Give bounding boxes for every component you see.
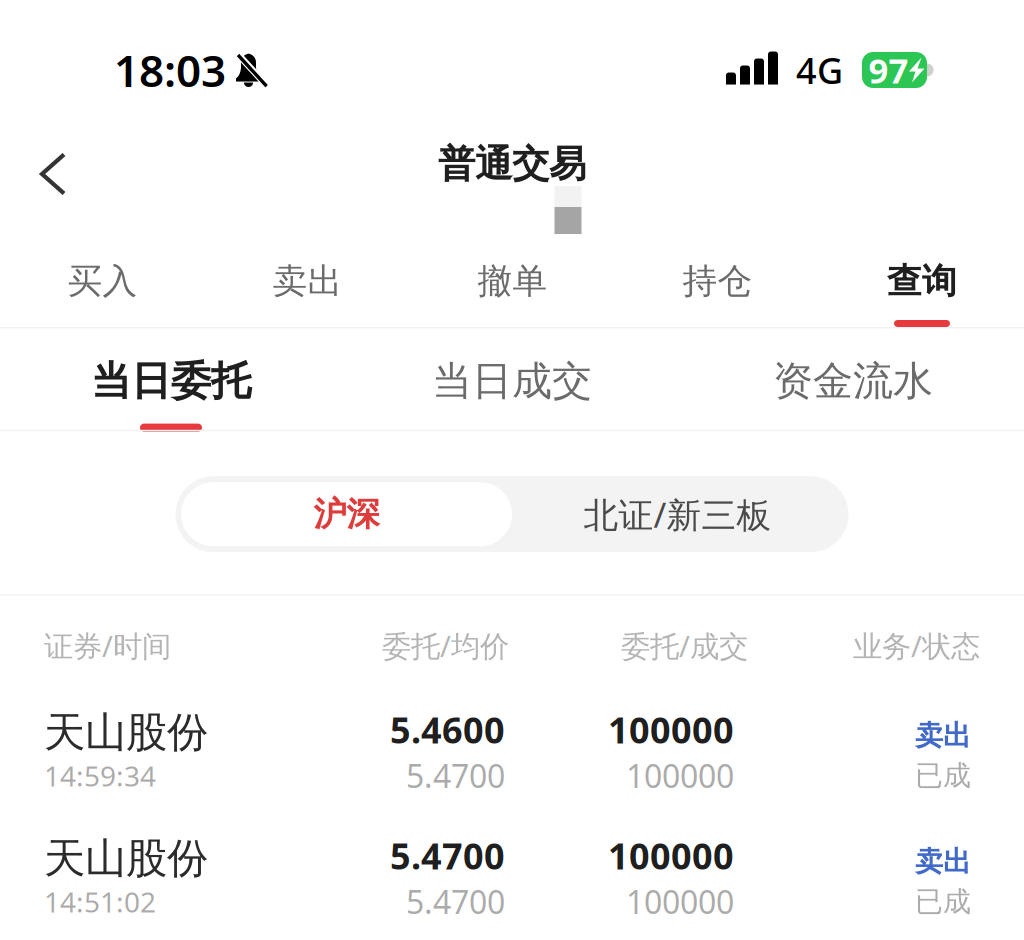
staticText: 查询	[887, 260, 957, 303]
staticText: 5.4700	[406, 880, 505, 923]
staticText: 100000	[626, 880, 734, 923]
staticText: 5.4700	[406, 754, 505, 797]
staticText: 4G	[796, 46, 843, 94]
staticText: 证券/时间	[44, 626, 171, 665]
staticText: 持仓	[682, 260, 752, 303]
staticText: 100000	[626, 754, 734, 797]
staticText: 当日委托	[91, 357, 251, 406]
button[interactable]: 撤单	[410, 228, 615, 327]
staticText: 5.4600	[390, 706, 505, 753]
button[interactable]: 资金流水	[682, 328, 1023, 431]
staticText: 资金流水	[773, 357, 933, 406]
staticText: 卖出	[915, 844, 971, 879]
button[interactable]: 卖出	[205, 228, 410, 327]
button[interactable]: 当日委托	[0, 328, 341, 431]
staticText: 5.4700	[390, 832, 505, 879]
staticText: 卖出	[915, 718, 971, 753]
staticText: 卖出	[272, 260, 342, 303]
button[interactable]: 天山股份	[0, 686, 1024, 812]
staticText: 沪深	[313, 494, 379, 535]
staticText: 14:59:34	[44, 757, 156, 794]
staticText: 天山股份	[44, 707, 208, 758]
button[interactable]: 天山股份	[0, 812, 1024, 938]
staticText: 买入	[67, 260, 137, 303]
staticText: 已成	[915, 884, 971, 919]
staticText: 委托/均价	[382, 626, 509, 665]
staticText: 已成	[915, 758, 971, 793]
button[interactable]: 当日成交	[341, 328, 682, 431]
staticText: 普通交易	[438, 141, 586, 187]
button[interactable]: Back	[7, 128, 99, 220]
staticText: 撤单	[477, 260, 547, 303]
button[interactable]: 买入	[0, 228, 205, 327]
button[interactable]: 沪深	[181, 482, 512, 546]
button[interactable]: 查询	[820, 228, 1024, 327]
button[interactable]: 持仓	[615, 228, 820, 327]
staticText: 100000	[608, 832, 734, 879]
staticText: 天山股份	[44, 833, 208, 884]
button[interactable]: 北证/新三板	[512, 482, 843, 546]
staticText: 北证/新三板	[583, 491, 771, 537]
staticText: 业务/状态	[853, 626, 980, 665]
staticText: 97	[868, 47, 908, 93]
staticText: 14:51:02	[44, 883, 156, 920]
staticText: 100000	[608, 706, 734, 753]
staticText: 委托/成交	[621, 626, 748, 665]
staticText: 当日成交	[432, 357, 592, 406]
staticText: 18:03	[114, 41, 226, 99]
